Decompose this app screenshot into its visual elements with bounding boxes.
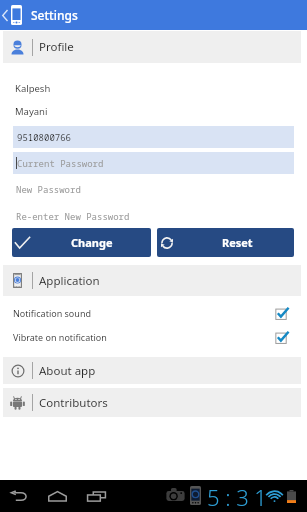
button[interactable]: Mayani <box>0 103 307 119</box>
button[interactable]: Re-enter New Password <box>13 208 294 224</box>
button[interactable]: Recent apps <box>82 480 111 512</box>
button[interactable]: Notification sound <box>0 303 307 323</box>
staticText: Mayani <box>15 105 48 118</box>
staticText: Vibrate on notification <box>13 331 107 343</box>
button[interactable]: Reset <box>157 228 294 257</box>
staticText: Settings <box>31 7 78 23</box>
button[interactable]: Vibrate on notification <box>0 327 307 347</box>
staticText: 5:31 <box>207 482 273 512</box>
button[interactable]: Contributors <box>3 388 301 417</box>
button[interactable]: About app <box>3 357 301 384</box>
staticText: 9510800766 <box>17 131 72 143</box>
button[interactable]: Change <box>12 228 151 257</box>
button[interactable]: Application <box>3 265 301 296</box>
staticText: About app <box>39 363 96 379</box>
staticText: Notification sound <box>13 307 91 319</box>
button[interactable]: Back <box>6 480 32 512</box>
staticText: Application <box>39 273 100 289</box>
staticText: Contributors <box>39 395 108 411</box>
button[interactable]: Navigate up <box>0 0 27 30</box>
button[interactable]: Home <box>43 480 72 512</box>
button[interactable]: Kalpesh <box>0 80 307 96</box>
button[interactable]: 9510800766 <box>13 126 294 148</box>
button[interactable]: New Password <box>13 181 294 197</box>
staticText: New Password <box>16 183 81 195</box>
staticText: Reset <box>222 235 253 250</box>
staticText: Change <box>71 235 113 250</box>
staticText: Re-enter New Password <box>16 210 130 222</box>
staticText: Kalpesh <box>15 82 51 95</box>
button[interactable]: Current Password <box>13 152 294 174</box>
staticText: Current Password <box>17 157 104 169</box>
staticText: Profile <box>39 39 74 55</box>
button[interactable]: Profile <box>3 31 301 63</box>
